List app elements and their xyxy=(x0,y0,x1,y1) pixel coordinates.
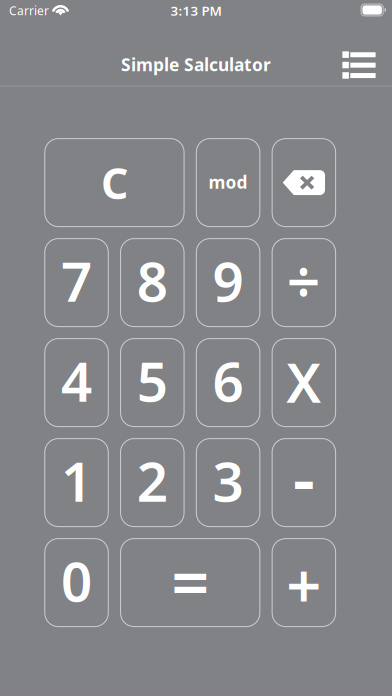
staticText: 2 xyxy=(137,444,168,517)
staticText: 3 xyxy=(213,444,244,517)
staticText: 9 xyxy=(213,244,244,317)
button[interactable]: 8 xyxy=(121,239,184,327)
staticText: Carrier xyxy=(9,2,49,18)
button[interactable]: 9 xyxy=(196,239,260,327)
staticText: 3:13 PM xyxy=(170,2,221,19)
staticText: 8 xyxy=(137,244,168,317)
staticText: ÷ xyxy=(287,242,321,320)
staticText: 7 xyxy=(61,244,92,317)
button[interactable]: + xyxy=(272,539,336,627)
button[interactable]: 1 xyxy=(45,439,108,527)
staticText: - xyxy=(293,431,315,523)
staticText: 6 xyxy=(213,344,244,417)
button[interactable]: 6 xyxy=(196,339,260,427)
button[interactable]: C xyxy=(45,139,184,227)
button[interactable]: - xyxy=(272,439,336,527)
button[interactable]: mod xyxy=(196,139,260,227)
button[interactable]: 3 xyxy=(196,439,260,527)
button[interactable]: 4 xyxy=(45,339,108,427)
button[interactable]: X xyxy=(272,339,336,427)
button[interactable]: 7 xyxy=(45,239,108,327)
button[interactable]: 5 xyxy=(121,339,184,427)
staticText: X xyxy=(286,345,321,418)
button[interactable]: Menu xyxy=(335,43,383,87)
staticText: 5 xyxy=(137,344,168,417)
staticText: + xyxy=(286,544,321,625)
staticText: mod xyxy=(209,171,248,194)
staticText: 0 xyxy=(61,544,92,617)
button[interactable]: ÷ xyxy=(272,239,336,327)
staticText: Simple Salculator xyxy=(121,53,271,76)
button[interactable]: 2 xyxy=(121,439,184,527)
button[interactable]: = xyxy=(121,539,260,627)
staticText: 4 xyxy=(61,344,92,417)
staticText: 1 xyxy=(61,444,92,517)
staticText: C xyxy=(101,154,128,211)
button[interactable]: Delete xyxy=(272,139,336,227)
button[interactable]: 0 xyxy=(45,539,108,627)
staticText: = xyxy=(171,537,209,625)
